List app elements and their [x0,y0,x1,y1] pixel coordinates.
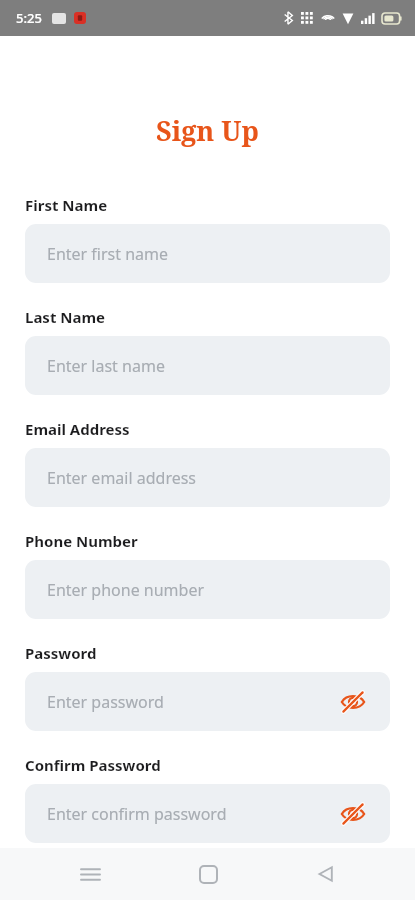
staticText: Sign Up [0,112,415,149]
staticText: Password [25,643,97,663]
staticText: Phone Number [25,531,138,551]
button[interactable]: Home [180,848,236,900]
button[interactable]: Back [297,848,353,900]
button[interactable]: Toggle password visibility [340,689,366,715]
staticText: Enter confirm password [47,803,227,825]
staticText: Enter first name [47,243,169,265]
staticText: Last Name [25,307,106,327]
button[interactable]: Toggle password visibility [340,801,366,827]
staticText: Enter password [47,691,164,713]
staticText: Confirm Password [25,755,161,775]
button[interactable]: Enter first name [25,224,390,283]
staticText: Enter last name [47,355,165,377]
button[interactable]: Recents [62,848,118,900]
button[interactable]: Enter phone number [25,560,390,619]
button[interactable]: Enter email address [25,448,390,507]
button[interactable]: Enter last name [25,336,390,395]
staticText: First Name [25,195,108,215]
staticText: Enter email address [47,467,197,489]
button[interactable]: Enter confirm password [25,784,390,843]
staticText: Enter phone number [47,579,205,601]
staticText: 5:25 [16,9,42,27]
staticText: Email Address [25,419,130,439]
button[interactable]: Enter password [25,672,390,731]
